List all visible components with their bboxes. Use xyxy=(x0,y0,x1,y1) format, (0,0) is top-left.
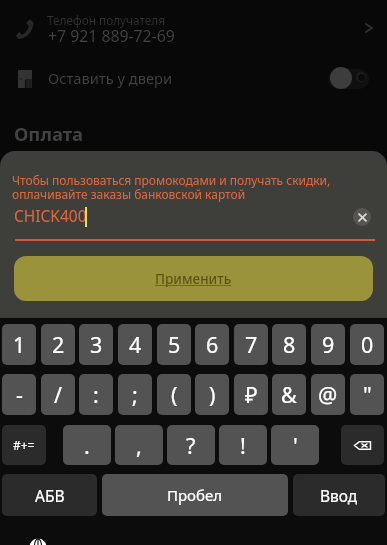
staticText: @ xyxy=(318,380,338,409)
staticText: ( xyxy=(171,380,178,409)
staticText: 1 xyxy=(13,330,26,359)
staticText: +7 921 889-72-69 xyxy=(48,25,175,47)
button[interactable]: / xyxy=(41,374,75,415)
staticText: ? xyxy=(186,431,196,460)
button[interactable]: Удалить xyxy=(341,425,384,465)
staticText: Оставить у двери xyxy=(48,68,173,88)
button[interactable]: Оставить у двери xyxy=(0,58,387,106)
button[interactable]: @ xyxy=(311,374,345,415)
staticText: 4 xyxy=(129,330,142,359)
staticText: Пробел xyxy=(167,485,223,505)
staticText: Применить xyxy=(155,270,232,288)
staticText: / xyxy=(54,380,62,409)
button[interactable]: 0 xyxy=(350,324,384,365)
button[interactable]: : xyxy=(79,374,113,415)
button[interactable]: Оставить у двери xyxy=(328,69,369,89)
button[interactable]: 2 xyxy=(41,324,75,365)
button[interactable]: Телефон получателя xyxy=(0,0,387,58)
button[interactable]: 5 xyxy=(157,324,191,365)
staticText: - xyxy=(16,380,23,409)
staticText: " xyxy=(363,380,372,409)
staticText: : xyxy=(93,380,99,409)
button[interactable]: ₽ xyxy=(234,374,268,415)
staticText: Чтобы пользоваться промокодами и получат… xyxy=(12,172,331,188)
staticText: ₽ xyxy=(245,380,258,409)
button[interactable]: 1 xyxy=(2,324,36,365)
button[interactable]: 9 xyxy=(311,324,345,365)
button[interactable]: 3 xyxy=(79,324,113,365)
staticText: 9 xyxy=(322,330,335,359)
staticText: ) xyxy=(209,380,216,409)
button[interactable]: ' xyxy=(271,425,319,465)
staticText: Телефон получателя xyxy=(47,12,166,28)
staticText: Оплата xyxy=(14,121,84,146)
button[interactable]: Пробел xyxy=(102,474,288,516)
button[interactable]: 4 xyxy=(118,324,152,365)
staticText: & xyxy=(281,380,297,409)
button[interactable]: " xyxy=(350,374,384,415)
button[interactable]: Сменить язык xyxy=(29,538,47,545)
staticText: #+= xyxy=(13,437,35,453)
staticText: . xyxy=(84,431,90,460)
button[interactable]: & xyxy=(272,374,306,415)
button[interactable]: , xyxy=(115,425,163,465)
staticText: 3 xyxy=(90,330,103,359)
button[interactable]: 7 xyxy=(234,324,268,365)
button[interactable]: #+= xyxy=(2,425,46,465)
button[interactable]: Применить xyxy=(14,256,373,301)
staticText: оплачивайте заказы банковской картой xyxy=(12,186,246,202)
staticText: ' xyxy=(293,431,298,460)
staticText: 6 xyxy=(206,330,219,359)
button[interactable]: ; xyxy=(118,374,152,415)
button[interactable]: Ввод xyxy=(293,474,385,516)
button[interactable]: ) xyxy=(195,374,229,415)
staticText: 7 xyxy=(245,330,258,359)
staticText: ! xyxy=(240,431,246,460)
button[interactable]: ? xyxy=(167,425,215,465)
staticText: Ввод xyxy=(320,485,358,506)
staticText: 8 xyxy=(283,330,296,359)
staticText: CHICK400 xyxy=(14,205,87,226)
button[interactable]: - xyxy=(2,374,36,415)
button[interactable]: . xyxy=(63,425,111,465)
staticText: 2 xyxy=(52,330,65,359)
button[interactable]: 8 xyxy=(272,324,306,365)
staticText: ; xyxy=(132,380,138,409)
staticText: 0 xyxy=(361,330,374,359)
button[interactable]: АБВ xyxy=(2,474,97,516)
staticText: 5 xyxy=(168,330,181,359)
button[interactable]: ( xyxy=(157,374,191,415)
button[interactable]: Очистить xyxy=(353,208,371,226)
button[interactable]: 6 xyxy=(195,324,229,365)
staticText: АБВ xyxy=(35,485,65,506)
button[interactable]: ! xyxy=(219,425,267,465)
staticText: , xyxy=(136,431,142,460)
